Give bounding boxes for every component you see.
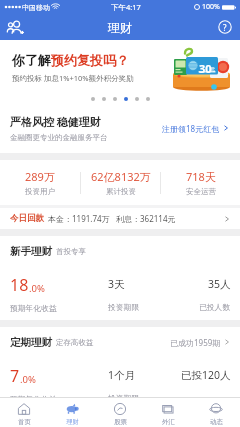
staticText: .0% [29,282,45,295]
button[interactable]: 你了解预约复投吗？ [0,40,240,103]
button[interactable]: 动态 [192,400,240,426]
staticText: 投资用户 [25,187,55,196]
staticText: 7 [10,365,20,387]
button[interactable]: 外汇 [144,400,192,426]
staticText: 30 [199,61,212,76]
staticText: 已投人数 [199,302,231,312]
staticText: ? [223,22,227,33]
button[interactable]: 首页 [0,400,48,426]
staticText: 你了解预约复投吗？ [12,52,129,68]
staticText: 股票 [114,418,127,426]
staticText: 本金：1191.74万 [48,213,110,224]
button[interactable]: 今日回款 [0,208,240,229]
staticText: 已成功1959期 [170,337,221,348]
staticText: 外汇 [162,418,175,426]
staticText: 金融圈更专业的金融服务平台 [10,133,108,142]
button[interactable]: Invite friends [0,14,30,40]
staticText: 预期年化收益 [10,394,57,397]
staticText: 718天 [186,169,216,184]
staticText: 安全运营 [186,187,216,196]
staticText: 100% [202,2,220,12]
staticText: 累计投资 [106,187,136,196]
button[interactable]: 严格风控 稳健理财 [0,103,240,153]
staticText: 289万 [25,169,55,184]
staticText: 注册领18元红包 [162,123,220,134]
staticText: 1个月 [108,368,136,382]
staticText: 定存高收益 [56,338,94,347]
staticText: 预约投标 加息1%+10%额外积分奖励 [12,73,134,83]
staticText: 定期理财 [10,336,52,349]
button[interactable]: 新手理财 [0,236,240,320]
staticText: 元 [210,66,215,72]
button[interactable]: 定期理财 [0,327,240,397]
staticText: 中国移动 [22,3,50,12]
staticText: 投资期限 [108,393,140,397]
staticText: 35人 [208,277,231,291]
staticText: 理财 [108,20,132,35]
staticText: 利息：362114元 [116,213,176,224]
staticText: 严格风控 稳健理财 [10,114,101,129]
staticText: 下午4:17 [111,2,141,12]
staticText: 18 [10,274,29,296]
staticText: 62亿8132万 [91,169,151,184]
button[interactable]: Help [210,14,240,40]
staticText: .0% [20,373,36,386]
staticText: 3天 [108,277,125,291]
staticText: 已投120人 [181,368,231,382]
staticText: 预期年化收益 [10,303,57,313]
staticText: 首投专享 [56,247,86,256]
staticText: 新手理财 [10,245,52,258]
staticText: 动态 [210,418,223,426]
staticText: 投资期限 [108,302,140,312]
staticText: 今日回款 [10,213,44,224]
button[interactable]: 股票 [96,400,144,426]
staticText: 首页 [18,418,31,426]
button[interactable]: 理财 [48,400,96,426]
staticText: 理财 [66,418,79,426]
